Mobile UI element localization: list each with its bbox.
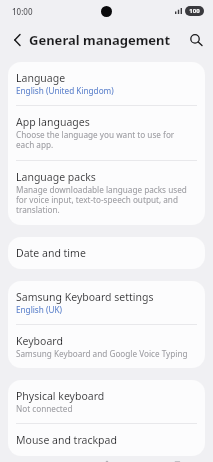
staticText: App languages: [16, 115, 90, 129]
staticText: Mouse and trackpad: [16, 433, 117, 447]
button[interactable]: Language: [8, 62, 205, 105]
staticText: English (UK): [16, 304, 62, 315]
staticText: Date and time: [16, 246, 86, 260]
staticText: 100: [189, 7, 200, 15]
staticText: Choose the language you want to use for …: [16, 129, 193, 151]
staticText: Keyboard: [16, 334, 63, 348]
staticText: General management: [29, 31, 171, 49]
button[interactable]: Mouse and trackpad: [8, 424, 205, 456]
staticText: Samsung Keyboard and Google Voice Typing: [16, 348, 188, 359]
button[interactable]: Samsung Keyboard settings: [8, 281, 205, 324]
button[interactable]: Back: [4, 27, 30, 53]
button[interactable]: Search: [183, 27, 209, 53]
button[interactable]: Keyboard: [8, 325, 205, 368]
staticText: Manage downloadable language packs used …: [16, 184, 193, 216]
staticText: Language: [16, 71, 66, 85]
staticText: Physical keyboard: [16, 389, 105, 403]
staticText: Samsung Keyboard settings: [16, 290, 154, 304]
staticText: Not connected: [16, 403, 73, 414]
staticText: Language packs: [16, 170, 96, 184]
staticText: English (United Kingdom): [16, 85, 114, 96]
button[interactable]: App languages: [8, 106, 205, 160]
staticText: 10:00: [12, 6, 33, 17]
button[interactable]: Language packs: [8, 161, 205, 225]
button[interactable]: Physical keyboard: [8, 380, 205, 423]
button[interactable]: Date and time: [8, 237, 205, 269]
